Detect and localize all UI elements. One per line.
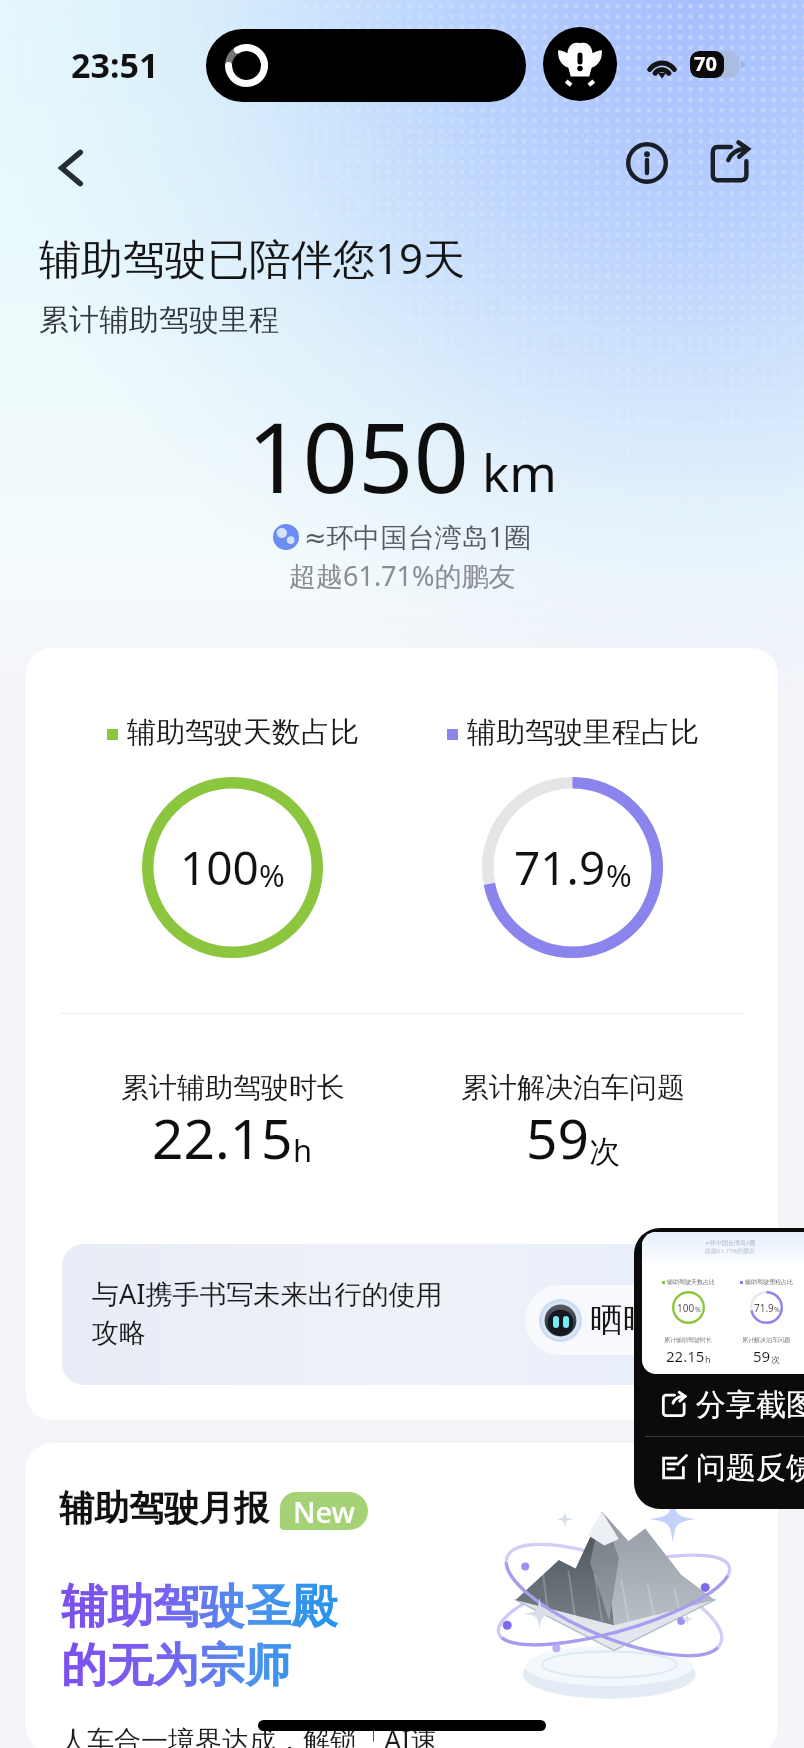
staticText: 人车合一境界达成，解锁「AI速	[60, 1721, 438, 1748]
staticText: 晒晒	[590, 1299, 656, 1341]
button[interactable]: 问题反馈	[634, 1437, 804, 1499]
staticText: New	[293, 1492, 355, 1530]
staticText: 累计辅助驾驶时长	[664, 1336, 712, 1344]
staticText: 100	[677, 1301, 695, 1315]
button[interactable]: Info	[619, 135, 675, 191]
staticText: 辅助驾驶里程占比	[745, 1278, 793, 1286]
staticText: 辅助驾驶已陪伴您19天	[39, 229, 466, 286]
staticText: 辅助驾驶圣殿	[61, 1578, 337, 1636]
staticText: 累计辅助驾驶里程	[39, 301, 279, 339]
staticText: 22.15	[152, 1100, 293, 1175]
staticText: 问题反馈	[696, 1449, 804, 1487]
staticText: h	[705, 1353, 711, 1365]
staticText: 分享截图	[696, 1386, 804, 1424]
staticText: 100	[180, 836, 259, 899]
staticText: 71.9	[514, 836, 606, 899]
staticText: ≈环中国台湾岛1圈	[705, 1239, 756, 1247]
staticText: 累计辅助驾驶时长	[121, 1070, 345, 1105]
button[interactable]: Back	[43, 140, 99, 196]
staticText: 辅助驾驶里程占比	[467, 714, 699, 751]
staticText: 的无为宗师	[61, 1637, 291, 1695]
button[interactable]: Share	[702, 135, 758, 191]
staticText: 与AI携手书写未来出行的使用	[92, 1275, 443, 1312]
staticText: 累计解决泊车问题	[461, 1070, 685, 1105]
staticText: 22.15	[666, 1346, 705, 1366]
staticText: %	[259, 854, 285, 896]
staticText: h	[293, 1129, 313, 1171]
staticText: 辅助驾驶天数占比	[127, 714, 359, 751]
staticText: %	[774, 1305, 780, 1315]
button[interactable]: 与AI携手书写未来出行的使用	[62, 1244, 742, 1385]
staticText: 攻略	[92, 1316, 146, 1350]
button[interactable]: 辅助驾驶月报	[26, 1443, 778, 1748]
staticText: km	[482, 437, 557, 506]
staticText: 70	[694, 51, 717, 77]
staticText: 71.9	[754, 1301, 774, 1315]
staticText: 累计解决泊车问题	[742, 1336, 790, 1344]
staticText: 辅助驾驶天数占比	[667, 1278, 715, 1286]
staticText: %	[606, 854, 632, 896]
staticText: 辅助驾驶月报	[59, 1486, 269, 1530]
staticText: ≈环中国台湾岛1圈	[304, 518, 532, 555]
staticText: 59	[526, 1100, 589, 1175]
button[interactable]: 分享截图	[634, 1374, 804, 1436]
staticText: %	[695, 1305, 701, 1315]
staticText: 59	[753, 1346, 771, 1366]
button[interactable]: 晒晒	[525, 1285, 742, 1355]
staticText: 超越61.71%的鹏友	[705, 1247, 756, 1255]
staticText: 次	[589, 1132, 620, 1171]
staticText: 23:51	[71, 42, 159, 88]
staticText: 1050	[247, 389, 469, 521]
staticText: 次	[771, 1354, 780, 1365]
staticText: 超越61.71%的鹏友	[289, 557, 516, 594]
